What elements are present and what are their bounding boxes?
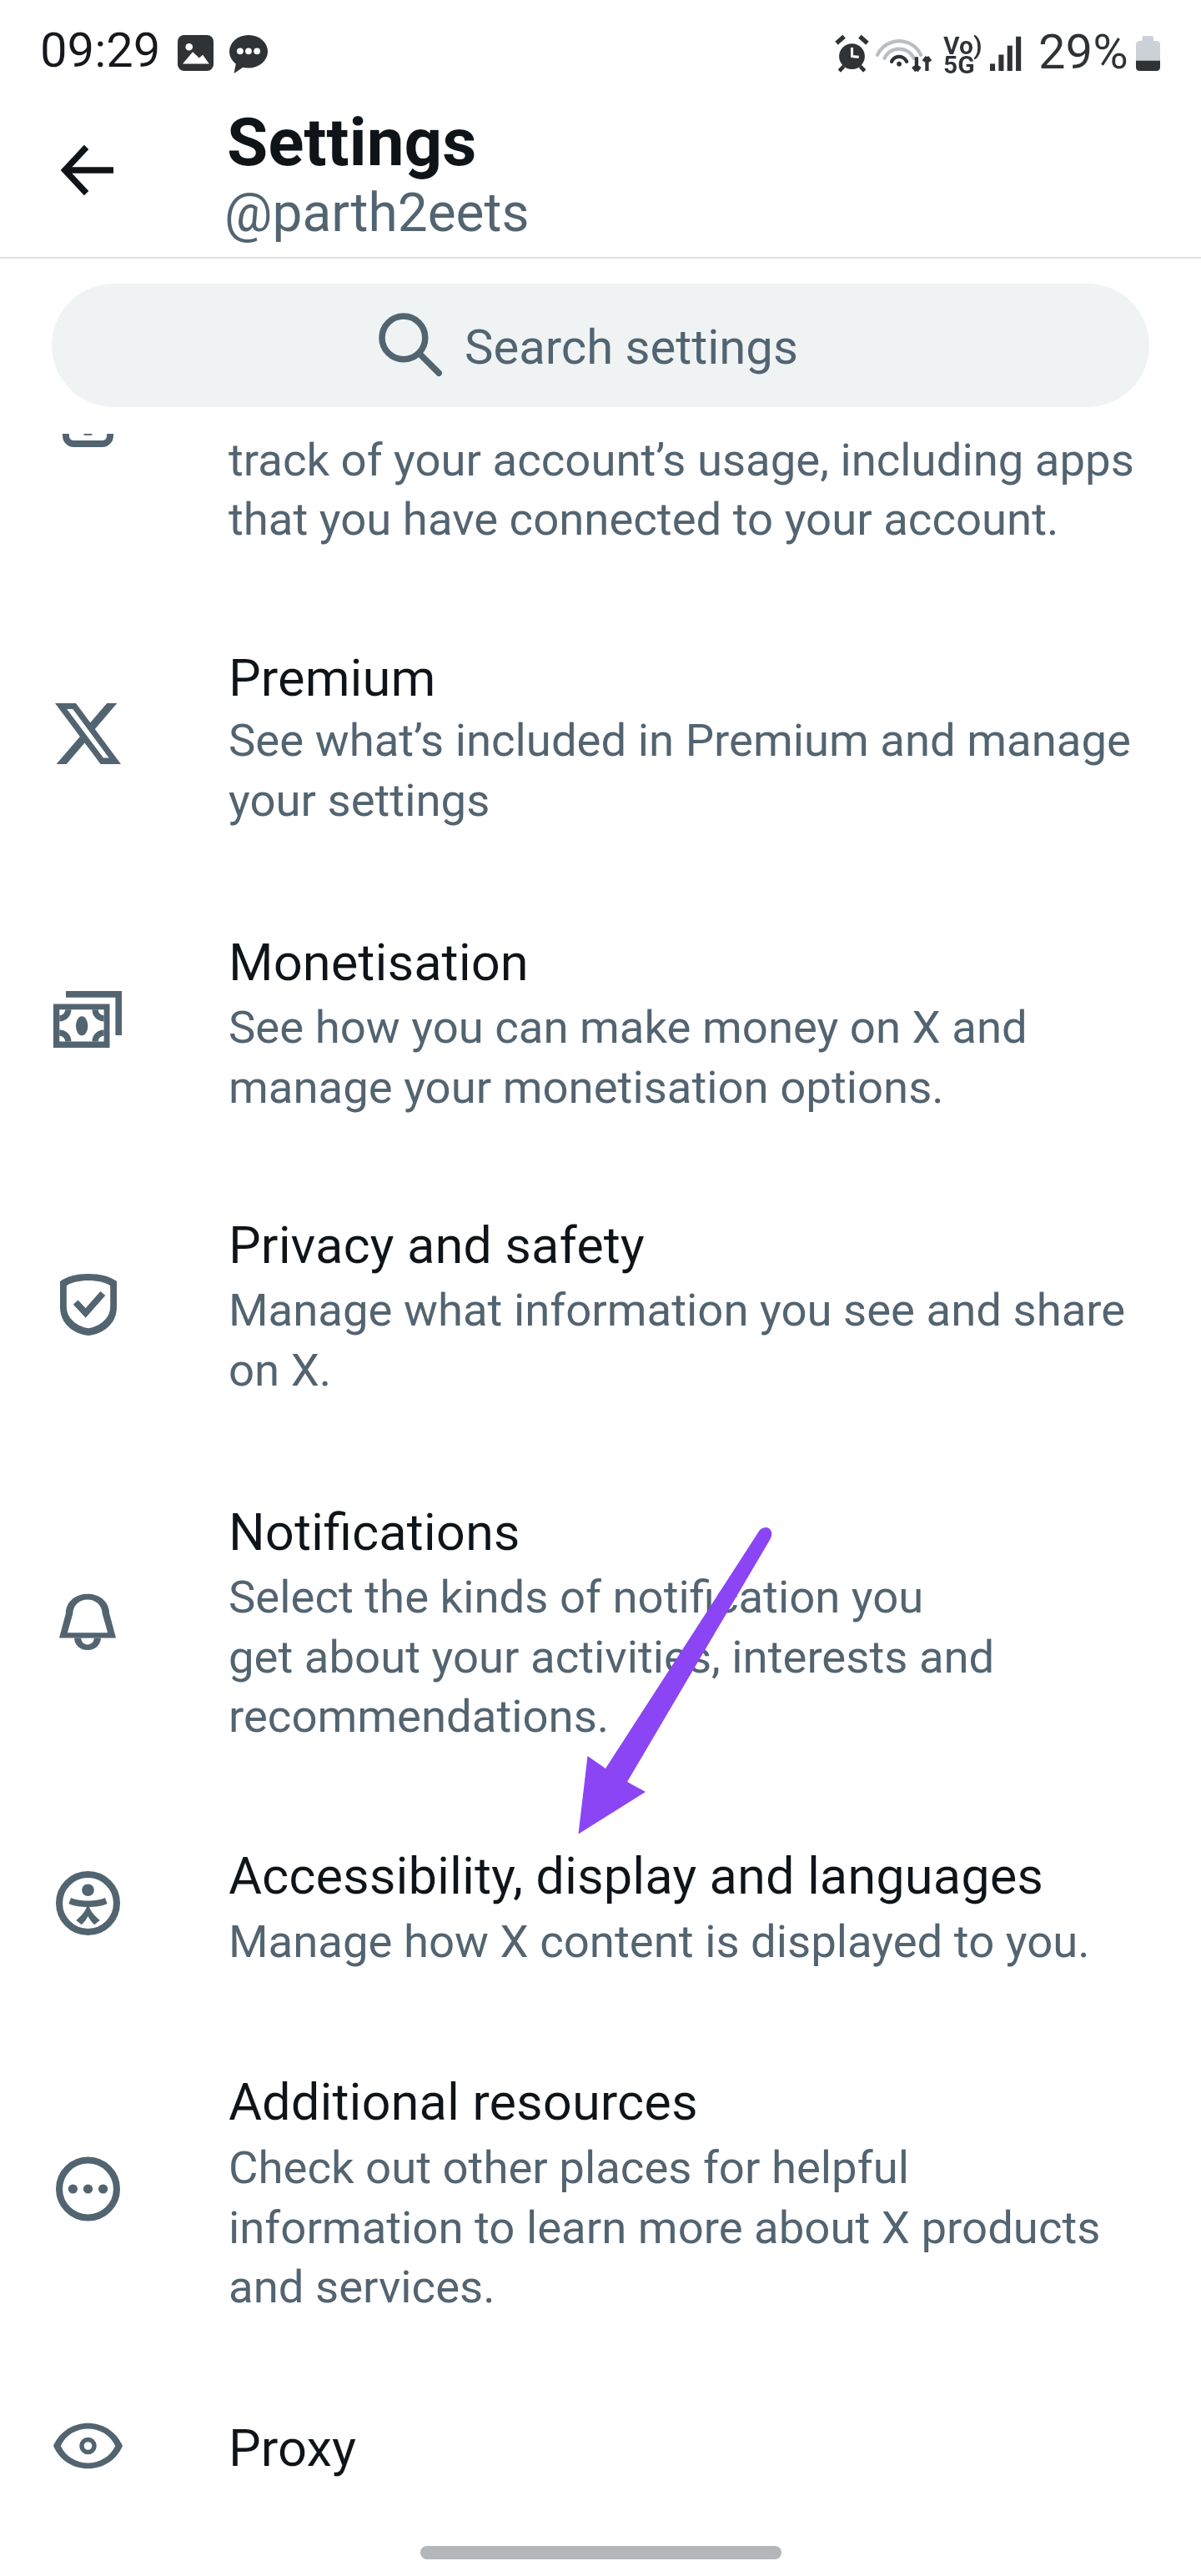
button[interactable]: Back: [33, 115, 143, 225]
staticText: Additional resources: [229, 2072, 698, 2132]
staticText: See how you can make money on X and: [229, 1000, 1028, 1054]
staticText: Accessibility, display and languages: [229, 1846, 1044, 1906]
button[interactable]: Proxy: [0, 2419, 1201, 2488]
staticText: Premium: [229, 648, 436, 708]
staticText: 5G: [943, 50, 975, 79]
staticText: your settings: [229, 773, 490, 827]
button[interactable]: Monetisation: [0, 933, 1201, 1126]
staticText: Monetisation: [229, 933, 529, 993]
staticText: Check out other places for helpful: [229, 2141, 909, 2194]
staticText: See what’s included in Premium and manag…: [229, 713, 1131, 767]
staticText: and services.: [229, 2260, 495, 2313]
button[interactable]: Accessibility, display and languages: [0, 1847, 1201, 1980]
staticText: 29%: [1038, 23, 1128, 80]
staticText: that you have connected to your account.: [229, 492, 1059, 546]
staticText: Notifications: [229, 1502, 520, 1562]
staticText: Manage what information you see and shar…: [229, 1283, 1126, 1336]
staticText: on X.: [229, 1343, 332, 1396]
staticText: get about your activities, interests and: [229, 1630, 995, 1683]
staticText: track of your account’s usage, including…: [229, 433, 1134, 486]
button[interactable]: Privacy and safety: [0, 1216, 1201, 1409]
staticText: Select the kinds of notification you: [229, 1570, 924, 1623]
staticText: recommendations.: [229, 1689, 610, 1743]
button[interactable]: Premium: [0, 649, 1201, 839]
staticText: manage your monetisation options.: [229, 1060, 944, 1114]
staticText: Vo): [943, 31, 982, 60]
staticText: Privacy and safety: [229, 1215, 645, 1275]
button[interactable]: Notifications: [0, 1503, 1201, 1755]
staticText: Settings: [227, 103, 477, 182]
staticText: information to learn more about X produc…: [229, 2201, 1101, 2254]
staticText: 09:29: [40, 22, 161, 78]
button[interactable]: Additional resources: [0, 2073, 1201, 2326]
button[interactable]: Search settings: [52, 284, 1149, 407]
staticText: Search settings: [465, 319, 798, 375]
button[interactable]: Apps and sessions: [0, 410, 1201, 557]
staticText: Proxy: [229, 2418, 357, 2478]
staticText: Manage how X content is displayed to you…: [229, 1914, 1090, 1968]
staticText: @parth2eets: [224, 182, 530, 244]
